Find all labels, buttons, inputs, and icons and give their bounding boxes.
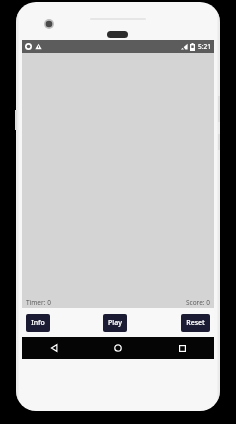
button[interactable]: Home	[86, 337, 150, 359]
staticText: Play	[108, 318, 122, 328]
staticText: Timer: 0	[26, 298, 51, 307]
button[interactable]: Info	[26, 314, 50, 332]
staticText: 5:21	[198, 42, 211, 51]
staticText: Score: 0	[186, 298, 210, 307]
button[interactable]: Back	[22, 337, 86, 359]
staticText: Reset	[186, 318, 205, 328]
button[interactable]: Play	[103, 314, 127, 332]
button[interactable]: Recent apps	[150, 337, 214, 359]
button[interactable]: Reset	[181, 314, 210, 332]
staticText: Info	[31, 318, 45, 328]
